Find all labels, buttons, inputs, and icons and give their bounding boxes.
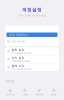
button[interactable]: 이용약관	[32, 89, 46, 96]
staticText: 계정 정보 확인	[11, 40, 25, 43]
staticText: 고객 지원	[5, 80, 14, 83]
staticText: 서비스 이용을 위한 계정 설정	[18, 14, 46, 17]
button[interactable]: 결제 수단	[5, 63, 59, 71]
button[interactable]: 계정 연동하기	[6, 32, 58, 37]
button[interactable]: 보안 설정	[5, 55, 59, 63]
button[interactable]: 앱정보	[46, 89, 61, 96]
button[interactable]: 계정 정보 확인	[5, 37, 59, 46]
staticText: 계정설정	[22, 7, 42, 13]
staticText: 앱정보	[51, 93, 57, 96]
staticText: 1:1문의	[21, 93, 28, 96]
staticText: 카드 정보를 관리해요	[11, 68, 31, 70]
staticText: 알림 설정	[11, 48, 24, 51]
staticText: 보안 설정	[11, 56, 24, 59]
staticText: 공지사항	[6, 93, 14, 96]
staticText: 계정 연동하기	[9, 33, 28, 36]
staticText: 비밀번호를 변경해요	[11, 60, 30, 62]
button[interactable]: 공지사항	[3, 89, 17, 96]
staticText: 결제 수단	[11, 64, 24, 67]
button[interactable]: 알림 설정	[5, 47, 59, 55]
staticText: 이용약관	[35, 93, 43, 96]
button[interactable]: 1:1문의	[17, 89, 32, 96]
staticText: 푸시 알림을 관리해요	[11, 52, 31, 54]
